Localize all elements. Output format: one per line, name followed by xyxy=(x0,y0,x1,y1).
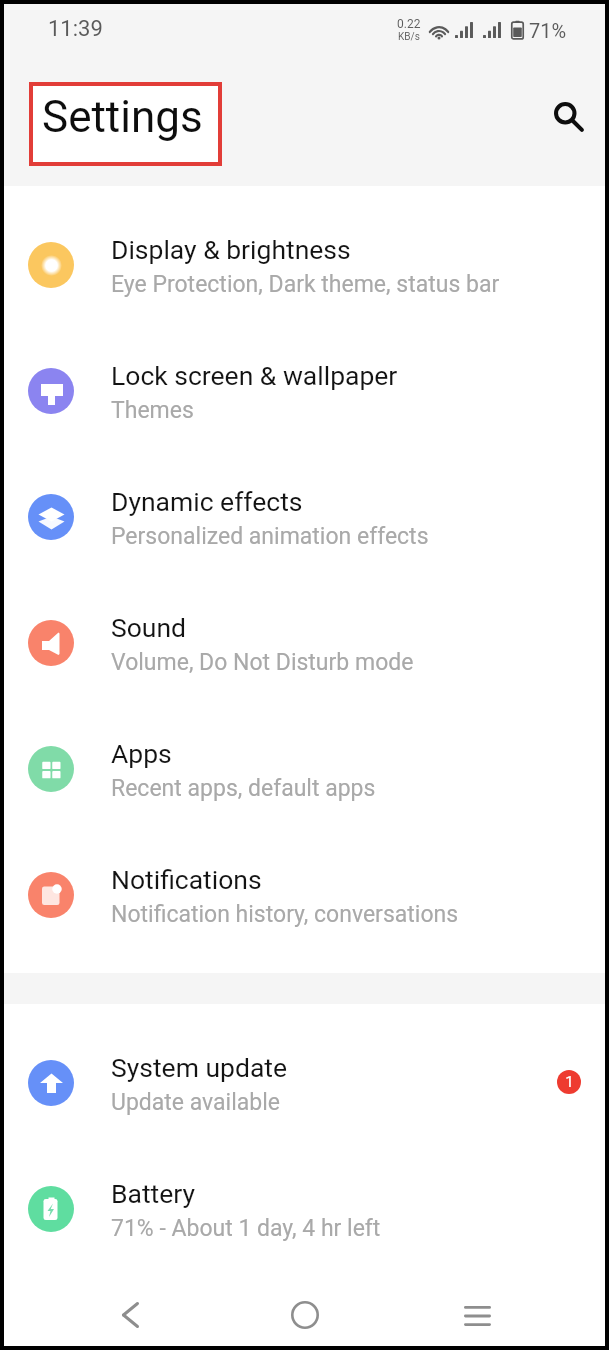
staticText: 71% xyxy=(529,19,567,42)
staticText: KB/s xyxy=(398,31,420,43)
button[interactable]: Apps xyxy=(4,706,605,832)
staticText: Settings xyxy=(42,91,203,143)
staticText: Notification history, conversations xyxy=(111,901,459,928)
button[interactable]: Recents xyxy=(449,1282,505,1350)
staticText: Display & brightness xyxy=(111,234,351,265)
staticText: 1 xyxy=(565,1073,574,1091)
staticText: Lock screen & wallpaper xyxy=(111,360,398,391)
staticText: Apps xyxy=(111,738,172,769)
staticText: Recent apps, default apps xyxy=(111,775,376,802)
button[interactable]: Lock screen & wallpaper xyxy=(4,328,605,454)
staticText: Personalized animation effects xyxy=(111,523,429,550)
staticText: Eye Protection, Dark theme, status bar xyxy=(111,271,500,298)
staticText: Notifications xyxy=(111,864,262,895)
staticText: Battery xyxy=(111,1178,196,1209)
button[interactable]: Sound xyxy=(4,580,605,706)
button[interactable]: Notifications xyxy=(4,832,605,958)
staticText: 11:39 xyxy=(48,16,103,42)
button[interactable]: Back xyxy=(102,1281,158,1349)
button[interactable]: System update xyxy=(4,1020,605,1146)
staticText: Volume, Do Not Disturb mode xyxy=(111,649,414,676)
button[interactable]: Dynamic effects xyxy=(4,454,605,580)
staticText: Themes xyxy=(111,397,194,424)
staticText: Sound xyxy=(111,612,187,643)
staticText: Dynamic effects xyxy=(111,486,303,517)
staticText: Update available xyxy=(111,1089,280,1116)
button[interactable]: Display & brightness xyxy=(4,202,605,328)
button[interactable]: Search xyxy=(544,92,594,142)
button[interactable]: Battery xyxy=(4,1146,605,1272)
button[interactable]: Home xyxy=(277,1281,333,1349)
staticText: 0.22 xyxy=(397,17,421,31)
staticText: 71% - About 1 day, 4 hr left xyxy=(111,1215,381,1242)
staticText: System update xyxy=(111,1052,288,1083)
